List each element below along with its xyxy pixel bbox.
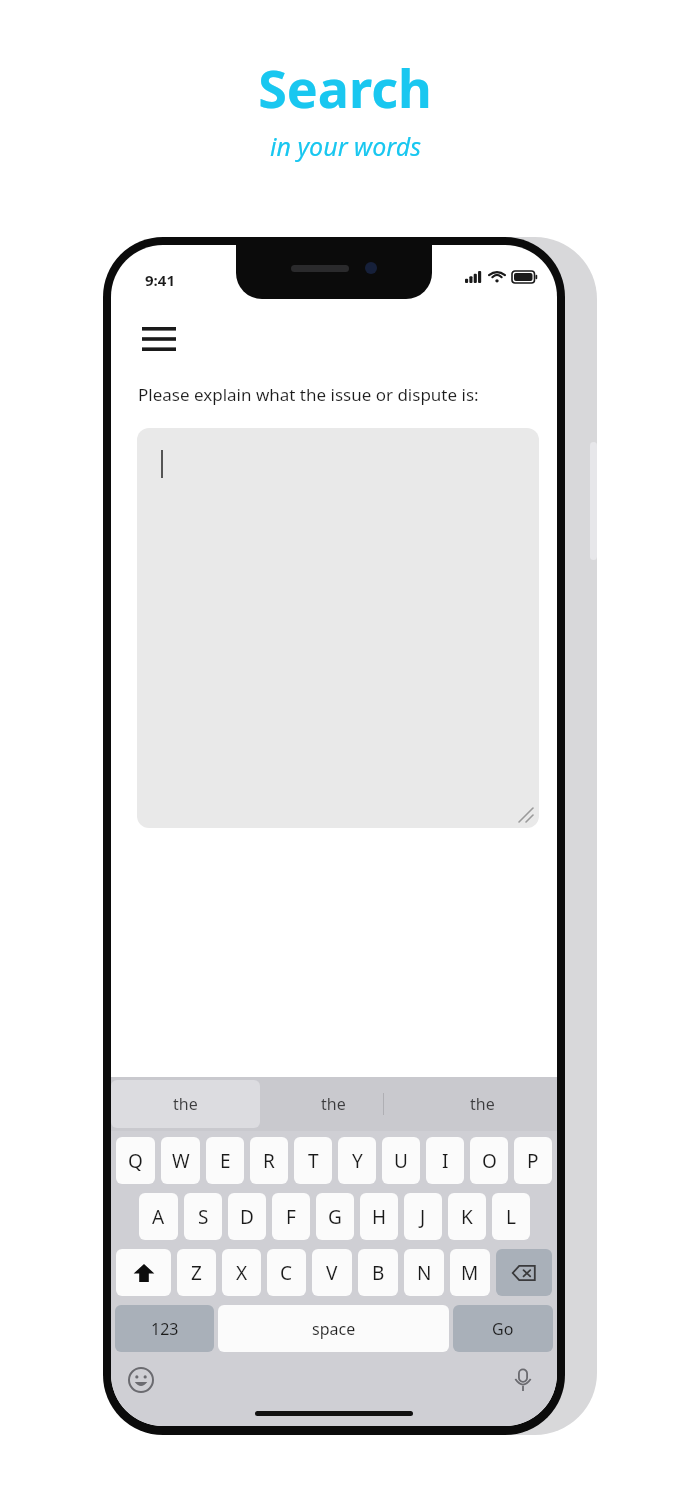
button[interactable]: K (448, 1193, 486, 1240)
staticText: F (286, 1204, 296, 1230)
button[interactable]: N (404, 1249, 444, 1296)
staticText: L (506, 1204, 516, 1230)
staticText: Y (352, 1148, 363, 1174)
staticText: K (461, 1204, 473, 1230)
staticText: J (420, 1204, 426, 1230)
button[interactable]: Shift (116, 1249, 171, 1296)
staticText: Q (128, 1148, 143, 1174)
button[interactable]: J (404, 1193, 442, 1240)
button[interactable] (137, 428, 539, 828)
button[interactable]: T (294, 1137, 332, 1184)
staticText: Search (258, 52, 432, 123)
button[interactable]: M (450, 1249, 490, 1296)
button[interactable]: Emoji (121, 1360, 161, 1400)
button[interactable]: C (267, 1249, 306, 1296)
button[interactable]: Z (177, 1249, 216, 1296)
button[interactable]: B (358, 1249, 398, 1296)
button[interactable]: E (206, 1137, 244, 1184)
button[interactable]: A (139, 1193, 178, 1240)
button[interactable]: V (312, 1249, 352, 1296)
staticText: N (417, 1260, 432, 1286)
staticText: H (372, 1204, 387, 1230)
staticText: V (326, 1260, 338, 1286)
staticText: O (482, 1148, 497, 1174)
button[interactable]: the (259, 1077, 408, 1131)
staticText: C (280, 1260, 293, 1286)
staticText: M (461, 1260, 479, 1286)
staticText: D (240, 1204, 254, 1230)
button[interactable]: W (161, 1137, 200, 1184)
staticText: E (220, 1148, 231, 1174)
button[interactable]: R (250, 1137, 288, 1184)
staticText: P (527, 1148, 539, 1174)
button[interactable]: Backspace (496, 1249, 552, 1296)
staticText: the (173, 1093, 198, 1115)
button[interactable]: S (184, 1193, 222, 1240)
staticText: X (236, 1260, 248, 1286)
staticText: T (308, 1148, 319, 1174)
staticText: 123 (151, 1318, 179, 1340)
button[interactable]: I (426, 1137, 464, 1184)
button[interactable]: H (360, 1193, 398, 1240)
button[interactable]: D (228, 1193, 266, 1240)
staticText: in your words (270, 129, 421, 163)
button[interactable]: Go (453, 1305, 553, 1352)
staticText: Z (191, 1260, 202, 1286)
button[interactable]: the (408, 1077, 557, 1131)
staticText: G (328, 1204, 342, 1230)
staticText: 9:41 (145, 270, 175, 290)
staticText: B (372, 1260, 385, 1286)
button[interactable]: X (222, 1249, 261, 1296)
staticText: R (263, 1148, 275, 1174)
button[interactable]: Y (338, 1137, 376, 1184)
staticText: U (394, 1148, 408, 1174)
button[interactable]: O (470, 1137, 508, 1184)
staticText: I (442, 1148, 449, 1174)
button[interactable]: space (218, 1305, 449, 1352)
button[interactable]: the (111, 1080, 260, 1128)
button[interactable]: F (272, 1193, 310, 1240)
staticText: Please explain what the issue or dispute… (138, 383, 479, 406)
button[interactable]: L (492, 1193, 530, 1240)
staticText: A (152, 1204, 165, 1230)
staticText: the (470, 1093, 495, 1115)
button[interactable]: G (316, 1193, 354, 1240)
staticText: the (321, 1093, 346, 1115)
staticText: W (172, 1148, 190, 1174)
button[interactable]: Q (116, 1137, 155, 1184)
staticText: Go (492, 1318, 514, 1340)
staticText: S (198, 1204, 209, 1230)
button[interactable]: Menu (137, 317, 181, 361)
button[interactable]: Voice input (503, 1360, 543, 1400)
button[interactable]: P (514, 1137, 552, 1184)
staticText: space (312, 1318, 356, 1340)
button[interactable]: U (382, 1137, 420, 1184)
button[interactable]: 123 (115, 1305, 214, 1352)
